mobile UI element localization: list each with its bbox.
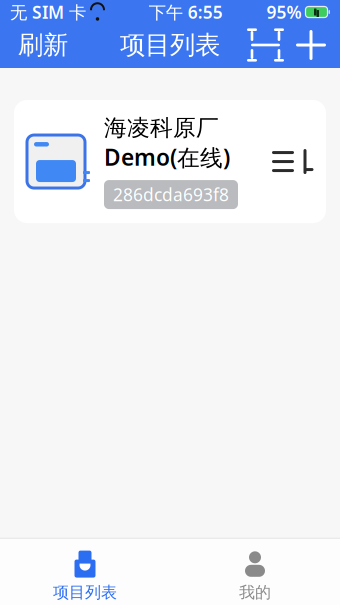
button[interactable]: 海凌科原厂 Demo(在线) bbox=[14, 100, 326, 223]
button[interactable]: 扫一扫 bbox=[243, 24, 288, 65]
button[interactable]: 项目列表 bbox=[0, 545, 170, 605]
staticText: 项目列表 bbox=[53, 583, 117, 602]
staticText: 我的 bbox=[239, 583, 271, 602]
staticText: 95% bbox=[266, 0, 301, 23]
staticText: 286dcda693f8 bbox=[113, 183, 229, 206]
staticText: 刷新 bbox=[18, 29, 68, 60]
button[interactable]: 刷新 bbox=[6, 21, 80, 68]
staticText: 无 SIM 卡 bbox=[10, 0, 86, 23]
button[interactable]: 我的 bbox=[170, 545, 340, 605]
staticText: 下午 6:55 bbox=[149, 0, 223, 23]
staticText: 项目列表 bbox=[120, 29, 220, 60]
button[interactable]: 添加项目 bbox=[288, 24, 334, 66]
staticText: 海凌科原厂 Demo(在线) bbox=[104, 114, 230, 172]
